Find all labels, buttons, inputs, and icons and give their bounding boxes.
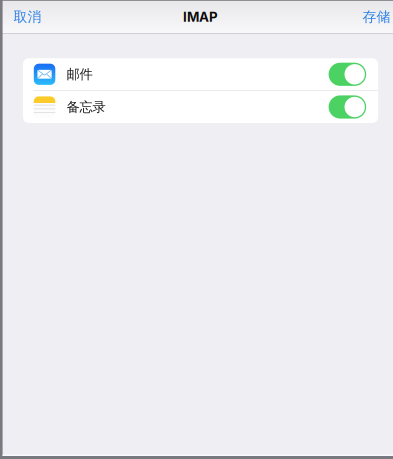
staticText: 存储 [362, 8, 390, 26]
staticText: 取消 [14, 8, 42, 26]
button[interactable]: 取消 [14, 2, 50, 32]
staticText: 备忘录 [67, 99, 106, 115]
button[interactable]: 存储 [354, 2, 390, 32]
button[interactable]: 备忘录 [23, 91, 378, 123]
button[interactable]: 邮件 [23, 58, 378, 90]
staticText: 邮件 [67, 66, 93, 83]
staticText: IMAP [183, 9, 218, 25]
